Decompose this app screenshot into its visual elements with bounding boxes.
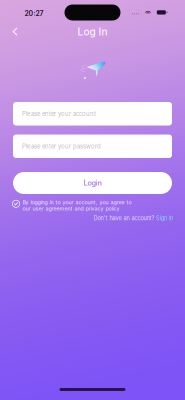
staticText: Please enter your password (22, 143, 101, 150)
staticText: By logging in to your account, you agree… (22, 199, 131, 212)
staticText: 20:27 (24, 9, 43, 18)
button[interactable]: Don't have an account? (0, 215, 185, 222)
staticText: Don't have an account? (93, 215, 154, 222)
button[interactable]: Login (0, 172, 185, 194)
staticText: Please enter your account (22, 110, 96, 117)
button[interactable]: Back (0, 24, 30, 42)
button[interactable]: Agree to terms (12, 199, 20, 208)
staticText: Sign in (156, 215, 173, 222)
staticText: Login (83, 179, 101, 187)
staticText: Log In (77, 26, 107, 38)
